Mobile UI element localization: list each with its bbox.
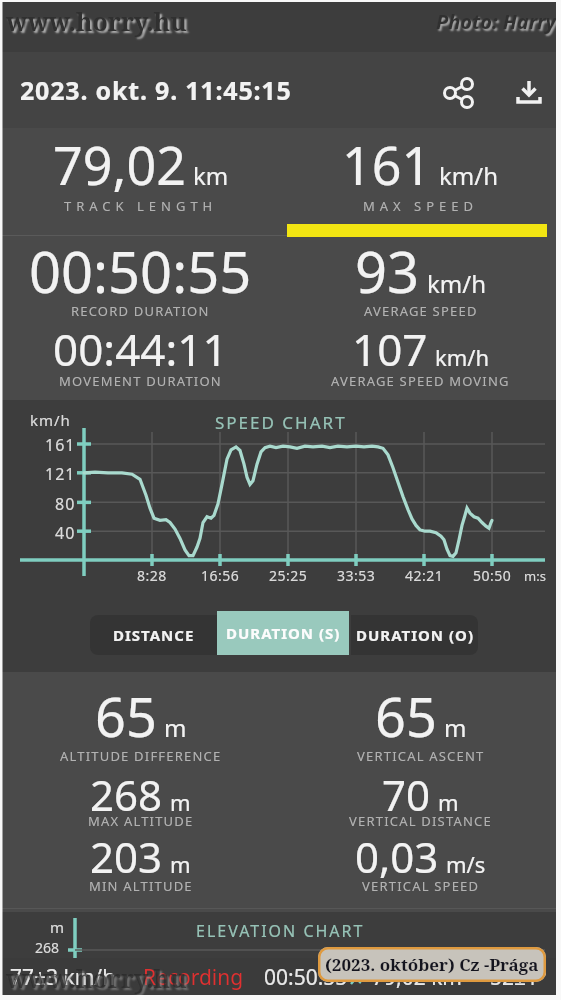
button[interactable]: (2023. október) Cz -Prága — [318, 947, 546, 982]
staticText: DURATION (O) — [356, 625, 474, 645]
staticText: www.horry.hu — [6, 4, 187, 38]
staticText: 42:21 — [405, 566, 444, 585]
staticText: 25:25 — [269, 566, 308, 585]
staticText: m — [438, 787, 459, 817]
staticText: www.horry.hu — [6, 961, 187, 995]
staticText: m — [170, 787, 191, 817]
staticText: 70 — [382, 766, 431, 823]
staticText: 80 — [55, 493, 76, 515]
staticText: TRACK LENGTH — [64, 197, 218, 215]
staticText: 203 — [90, 828, 163, 885]
staticText: m — [444, 711, 467, 744]
staticText: RECORD DURATION — [71, 302, 210, 320]
staticText: DISTANCE — [113, 625, 195, 645]
staticText: m — [170, 849, 191, 879]
staticText: 16:56 — [201, 566, 240, 585]
staticText: VERTICAL SPEED — [362, 877, 480, 895]
staticText: 8:28 — [137, 566, 167, 585]
staticText: MIN ALTITUDE — [89, 877, 193, 895]
button[interactable]: DURATION (O) — [351, 615, 478, 655]
staticText: 65 — [95, 679, 157, 753]
button[interactable]: DISTANCE — [90, 615, 217, 655]
staticText: 107 — [352, 319, 428, 379]
staticText: VERTICAL DISTANCE — [349, 812, 492, 830]
staticText: km — [193, 159, 229, 192]
staticText: ALTITUDE DIFFERENCE — [60, 747, 222, 765]
staticText: ELEVATION CHART — [196, 920, 365, 942]
staticText: 268 — [90, 766, 163, 823]
staticText: MAX ALTITUDE — [88, 812, 194, 830]
staticText: m — [50, 917, 65, 937]
staticText: 52±1° — [490, 963, 548, 992]
staticText: m:s — [524, 567, 546, 585]
staticText: SPEED CHART — [215, 411, 347, 434]
staticText: km/h — [435, 342, 490, 372]
staticText: 79,02 km — [372, 963, 462, 992]
staticText: 161 — [342, 129, 432, 200]
staticText: 00:50:55 — [29, 233, 252, 309]
staticText: km/h — [427, 267, 487, 300]
button[interactable] — [442, 76, 476, 110]
staticText: 33:53 — [337, 566, 376, 585]
staticText: 0,03 — [355, 828, 439, 885]
staticText: MOVEMENT DURATION — [59, 372, 222, 390]
staticText: 40 — [55, 522, 76, 544]
staticText: 161 — [45, 434, 76, 456]
staticText: Photo: Harry — [436, 8, 556, 35]
staticText: 93 — [355, 233, 420, 309]
staticText: 00:44:11 — [53, 319, 228, 379]
staticText: 65 — [375, 679, 437, 753]
staticText: 77±3 km/h — [10, 963, 116, 992]
staticText: 268 — [35, 938, 60, 957]
staticText: DURATION (S) — [226, 623, 341, 643]
button[interactable]: DURATION (S) — [217, 611, 349, 655]
staticText: 121 — [45, 463, 76, 485]
button[interactable] — [512, 76, 546, 110]
staticText: MAX SPEED — [363, 197, 479, 215]
staticText: 2023. okt. 9. 11:45:15 — [20, 73, 292, 107]
staticText: m/s — [446, 849, 486, 879]
staticText: km/h — [439, 159, 499, 192]
staticText: AVERAGE SPEED — [364, 302, 478, 320]
staticText: 79,02 — [53, 129, 186, 200]
staticText: km/h — [30, 410, 71, 430]
staticText: (2023. október) Cz -Prága — [325, 953, 539, 976]
staticText: 50:50 — [473, 566, 512, 585]
staticText: m — [164, 711, 187, 744]
staticText: VERTICAL ASCENT — [357, 747, 485, 765]
staticText: 00:50:55 — [264, 963, 348, 992]
staticText: AVERAGE SPEED MOVING — [331, 372, 510, 390]
staticText: Recording — [143, 963, 244, 992]
